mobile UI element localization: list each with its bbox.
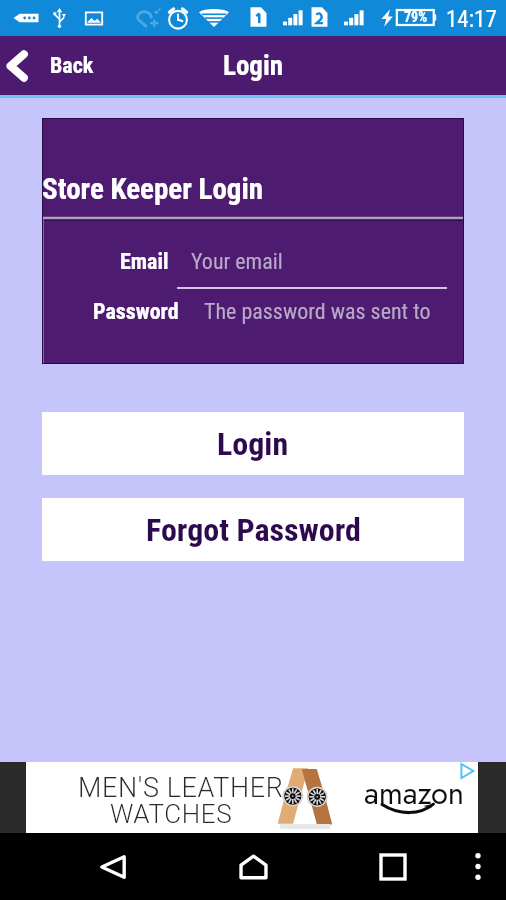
button[interactable]: Login [42, 412, 464, 475]
staticText: 14:17 [446, 6, 497, 33]
staticText: Your email [191, 249, 283, 275]
button[interactable]: Home [228, 833, 278, 900]
button[interactable]: Back [88, 833, 138, 900]
staticText: Login [217, 425, 289, 463]
staticText: Login [223, 50, 284, 82]
button[interactable]: Forgot Password [42, 498, 464, 561]
staticText: Password [93, 299, 179, 325]
staticText: Back [50, 53, 94, 79]
staticText: Forgot Password [146, 511, 361, 549]
staticText: Email [120, 249, 169, 275]
staticText: 79% [404, 9, 428, 25]
button[interactable]: MEN'S LEATHER [26, 762, 478, 833]
button[interactable]: More options [458, 833, 498, 900]
staticText: amazon [364, 771, 464, 816]
staticText: Store Keeper Login [42, 172, 263, 206]
staticText: WATCHES [110, 799, 233, 829]
button[interactable]: Recent apps [368, 833, 418, 900]
button[interactable]: Back [0, 36, 506, 95]
staticText: MEN'S LEATHER [78, 772, 284, 804]
staticText: The password was sent to your email [204, 299, 431, 325]
